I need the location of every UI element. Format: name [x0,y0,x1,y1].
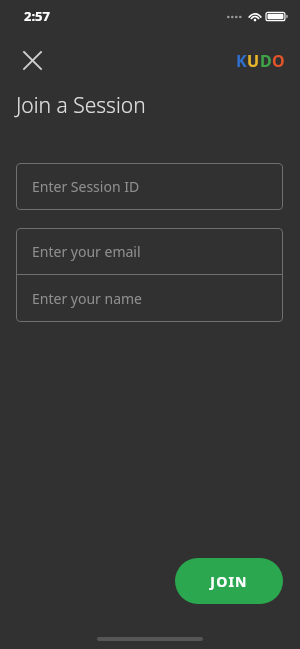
staticText: JOIN [210,572,248,591]
staticText: O [272,50,284,70]
staticText: Join a Session [16,91,146,120]
button[interactable]: Enter your name [16,275,283,322]
staticText: Enter your name [32,289,142,308]
button[interactable]: JOIN [175,558,283,604]
staticText: D [260,50,272,70]
staticText: U [247,50,260,70]
button[interactable]: Enter Session ID [16,163,283,210]
staticText: K [236,50,247,70]
staticText: Enter your email [32,242,141,261]
button[interactable]: Enter your email [16,228,283,274]
staticText: Enter Session ID [32,177,140,196]
button[interactable]: Close [15,43,49,77]
staticText: 2:57 [24,7,50,25]
button[interactable]: KUDO logo [236,50,284,70]
